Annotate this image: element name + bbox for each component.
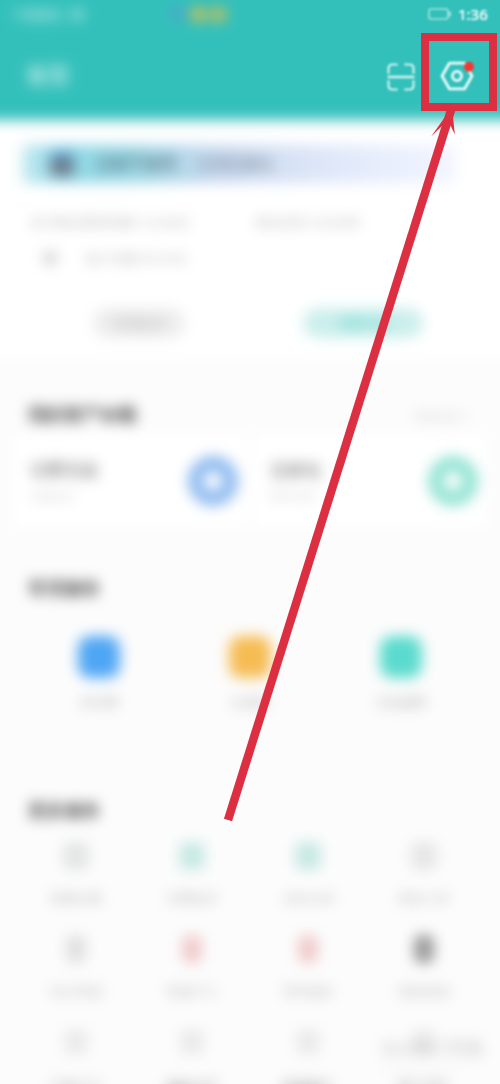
staticText: 靓号专区: [282, 1076, 334, 1084]
staticText: 我的资产余额: [28, 404, 136, 427]
button[interactable]: 话费充值: [14, 434, 246, 528]
staticText: Baidu 经验: [382, 1034, 485, 1061]
staticText: 流量包: [270, 460, 321, 481]
button[interactable]: 充值缴费: [325, 636, 476, 710]
button[interactable]: 查话费: [24, 636, 174, 710]
button[interactable]: 客服中心: [134, 935, 250, 999]
button[interactable]: 套餐余量: [18, 842, 134, 906]
staticText: 话费充值: [30, 460, 98, 481]
staticText: 活动中心: [50, 1076, 102, 1084]
staticText: 号卡办理: [166, 1076, 218, 1084]
button[interactable]: 查看账单: [93, 308, 185, 338]
staticText: 首页: [26, 62, 70, 90]
staticText: 流量不够用: [96, 154, 176, 174]
button[interactable]: 国际漫游: [366, 935, 482, 999]
button[interactable]: 流量包: [254, 434, 486, 528]
staticText: 办理流量包: [198, 155, 273, 174]
button[interactable]: 更多服务: [366, 1028, 482, 1084]
button[interactable]: Scan QR code: [381, 57, 421, 97]
button[interactable]: 我的订单: [366, 842, 482, 906]
staticText: 话费充值: [337, 315, 389, 331]
staticText: 充值缴费: [375, 694, 427, 710]
button[interactable]: 话费账单: [134, 842, 250, 906]
button[interactable]: 流量不够用: [22, 145, 455, 183]
staticText: 更多服务: [28, 800, 100, 823]
button[interactable]: Customer service: [435, 54, 479, 98]
staticText: 常用服务: [28, 578, 100, 601]
button[interactable]: 靓号专区: [250, 1028, 366, 1084]
staticText: 办套餐: [230, 694, 269, 710]
button[interactable]: 话费充值: [303, 308, 423, 338]
button[interactable]: 宽带服务: [250, 935, 366, 999]
button[interactable]: 积分商城: [18, 935, 134, 999]
button[interactable]: 办套餐: [174, 636, 325, 710]
button[interactable]: 活动中心: [18, 1028, 134, 1084]
staticText: 中国移动: [14, 7, 62, 22]
button[interactable]: 业务办理: [250, 842, 366, 906]
button[interactable]: 号卡办理: [134, 1028, 250, 1084]
staticText: 1:36: [458, 4, 488, 24]
